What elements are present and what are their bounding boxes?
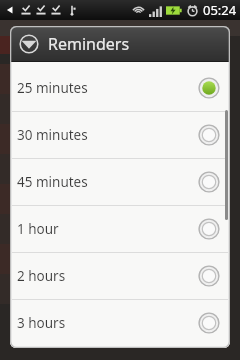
- button[interactable]: 45 minutes: [10, 159, 230, 205]
- staticText: Reminders: [48, 33, 130, 55]
- staticText: 45 minutes: [17, 173, 198, 191]
- button[interactable]: 2 hours: [10, 253, 230, 299]
- staticText: 05:24: [203, 1, 237, 19]
- button[interactable]: 3 hours: [10, 300, 230, 346]
- button[interactable]: 1 hour: [10, 206, 230, 252]
- staticText: 2 hours: [17, 267, 198, 285]
- button[interactable]: 30 minutes: [10, 112, 230, 158]
- staticText: 25 minutes: [17, 79, 198, 97]
- other: Expand: [19, 34, 39, 54]
- button[interactable]: Expand: [10, 26, 230, 62]
- button[interactable]: 25 minutes: [10, 65, 230, 111]
- staticText: 1 hour: [17, 220, 198, 238]
- staticText: 30 minutes: [17, 126, 198, 144]
- staticText: 3 hours: [17, 314, 198, 332]
